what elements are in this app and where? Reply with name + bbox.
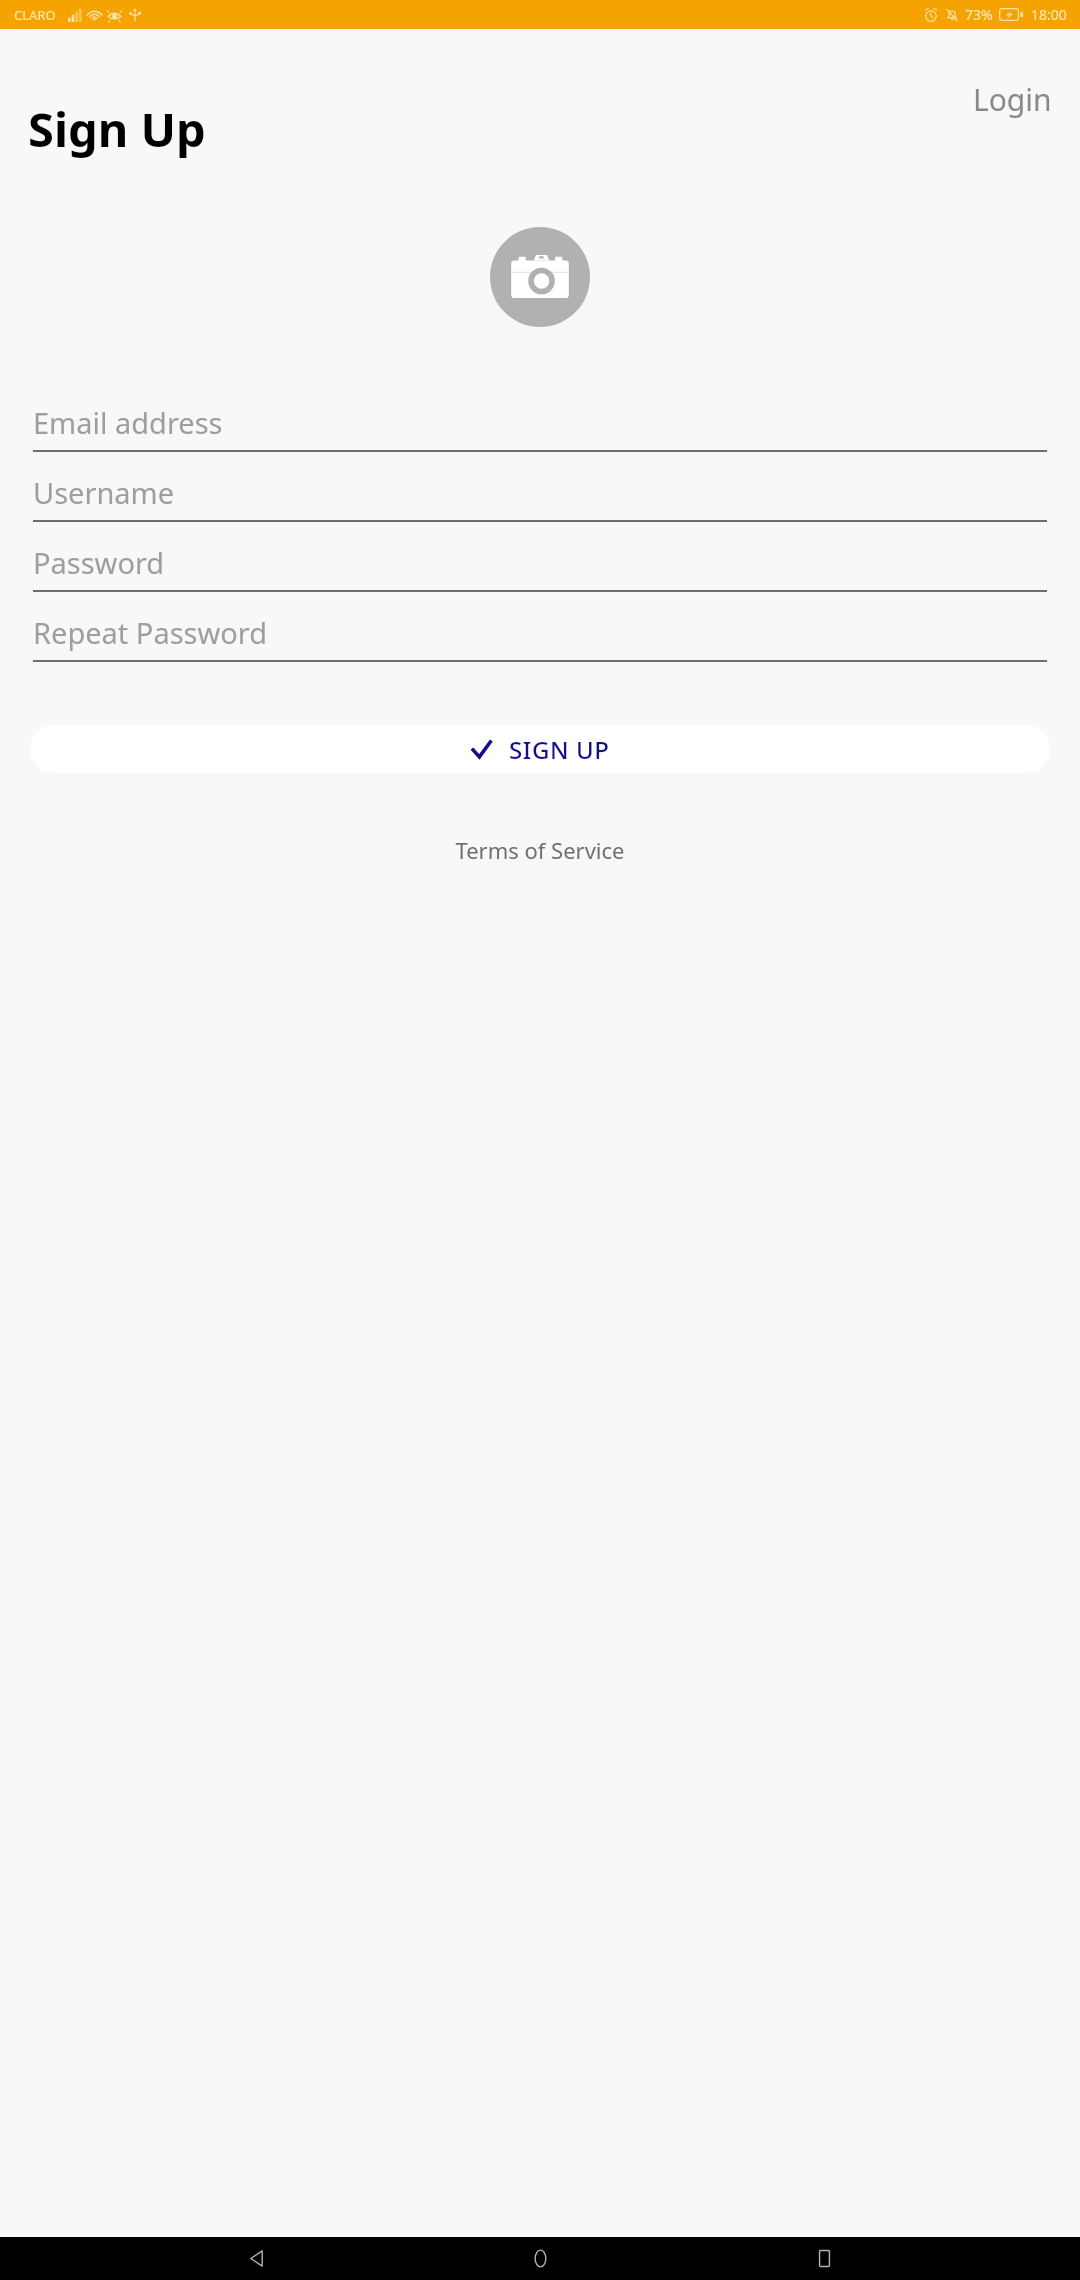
button[interactable]: Back: [228, 2237, 284, 2280]
staticText: Terms of Service: [455, 835, 625, 865]
button[interactable]: Home: [512, 2237, 568, 2280]
button[interactable]: Repeat Password: [33, 609, 1047, 662]
button[interactable]: Terms of Service: [445, 830, 635, 870]
button[interactable]: Login: [967, 75, 1058, 124]
button[interactable]: Recent apps: [796, 2237, 852, 2280]
staticText: Password: [33, 543, 165, 582]
staticText: Login: [973, 79, 1052, 120]
button[interactable]: Username: [33, 469, 1047, 522]
staticText: CLARO: [14, 6, 56, 24]
button[interactable]: Add profile photo: [490, 227, 590, 327]
button[interactable]: Password: [33, 539, 1047, 592]
staticText: 73%: [965, 5, 993, 24]
staticText: Email address: [33, 403, 223, 442]
staticText: Username: [33, 473, 175, 512]
staticText: SIGN UP: [509, 733, 610, 766]
staticText: Repeat Password: [33, 613, 268, 652]
button[interactable]: Email address: [33, 399, 1047, 452]
staticText: 18:00: [1031, 5, 1067, 24]
staticText: Sign Up: [28, 97, 206, 161]
button[interactable]: SIGN UP: [30, 725, 1050, 773]
